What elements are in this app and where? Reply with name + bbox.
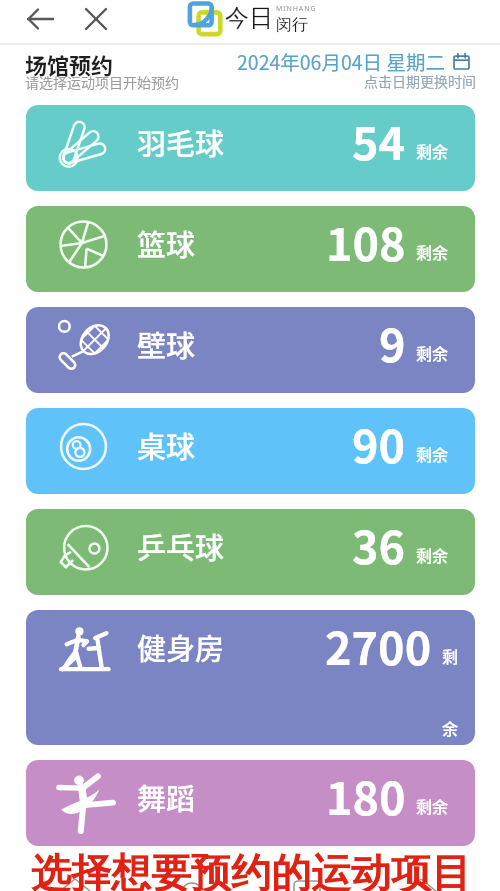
staticText: 壁球 <box>137 323 196 365</box>
staticText: 剩余 <box>442 644 449 739</box>
staticText: 剩余 <box>416 543 449 566</box>
button[interactable]: 羽毛球 <box>26 105 475 191</box>
button[interactable]: 桌球 <box>26 408 475 494</box>
staticText: 剩余 <box>416 341 449 364</box>
staticText: 180 <box>326 763 406 828</box>
button[interactable]: Close <box>80 3 112 35</box>
staticText: 108 <box>326 209 406 274</box>
staticText: 2700 <box>325 613 432 678</box>
staticText: 剩余 <box>416 794 449 817</box>
button[interactable]: 乒乓球 <box>26 509 475 595</box>
staticText: 闵行 <box>276 15 308 35</box>
staticText: 剩余 <box>416 240 449 263</box>
button[interactable]: Back <box>24 3 56 35</box>
staticText: 篮球 <box>137 222 196 264</box>
staticText: 健身房 <box>137 626 225 668</box>
staticText: 舞蹈 <box>137 776 196 818</box>
button[interactable]: 篮球 <box>26 206 475 292</box>
staticText: 羽毛球 <box>137 121 225 163</box>
button[interactable]: 舞蹈 <box>26 760 475 846</box>
staticText: 剩余 <box>416 139 449 162</box>
button[interactable]: 健身房 <box>26 610 475 745</box>
staticText: MINHANG <box>276 4 317 14</box>
staticText: 今日 <box>225 3 273 33</box>
staticText: 36 <box>352 512 406 577</box>
staticText: 2024年06月04日 星期二 <box>237 47 445 75</box>
staticText: 点击日期更换时间 <box>364 71 476 91</box>
staticText: 剩余 <box>416 442 449 465</box>
staticText: 场馆预约 <box>25 48 114 80</box>
staticText: 桌球 <box>137 424 196 466</box>
staticText: 54 <box>352 108 406 173</box>
staticText: 9 <box>379 310 406 375</box>
staticText: 选择想要预约的运动项目 <box>31 848 471 891</box>
button[interactable]: Pick date <box>453 53 470 70</box>
button[interactable]: 壁球 <box>26 307 475 393</box>
staticText: 请选择运动项目开始预约 <box>25 72 179 92</box>
staticText: 90 <box>352 411 406 476</box>
staticText: 乒乓球 <box>137 525 225 567</box>
